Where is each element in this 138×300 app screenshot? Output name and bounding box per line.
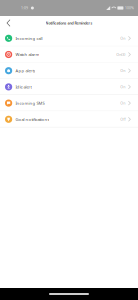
staticText: Goal notifications (15, 116, 49, 122)
button[interactable]: Watch alarm (0, 46, 138, 63)
staticText: Notifications and Reminders (45, 21, 92, 25)
staticText: On (120, 84, 125, 89)
staticText: 100% (125, 6, 134, 10)
staticText: Incoming SMS (15, 100, 44, 106)
button[interactable]: Idle alert (0, 79, 138, 95)
staticText: App alerts (15, 68, 35, 73)
staticText: Incoming call (15, 35, 42, 41)
staticText: On (120, 36, 125, 41)
staticText: Watch alarm (15, 52, 39, 57)
staticText: On(3) (116, 52, 125, 57)
staticText: On (120, 101, 125, 105)
staticText: Off (120, 117, 125, 122)
button[interactable]: Incoming SMS (0, 95, 138, 111)
staticText: On (120, 68, 125, 73)
button[interactable]: App alerts (0, 63, 138, 79)
staticText: Idle alert (15, 84, 31, 90)
button[interactable]: Incoming call (0, 30, 138, 46)
button[interactable]: Goal notifications (0, 111, 138, 127)
button[interactable]: Back (0, 16, 17, 30)
staticText: 1:09 (21, 6, 28, 10)
